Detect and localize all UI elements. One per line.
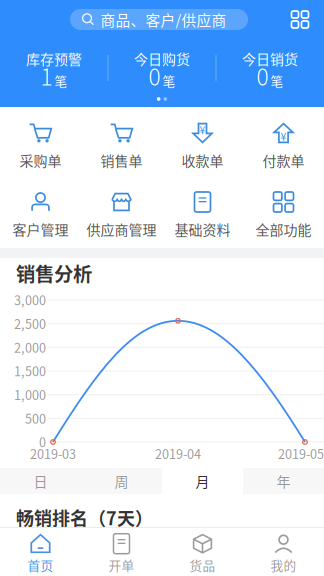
staticText: 月 <box>195 471 209 491</box>
staticText: 0 <box>148 59 160 92</box>
staticText: 库存预警 <box>26 48 82 69</box>
staticText: 供应商管理 <box>86 219 156 239</box>
staticText: 500 <box>25 409 46 427</box>
button[interactable]: 全部功能 <box>243 177 324 246</box>
button[interactable]: 采购单 <box>0 108 81 177</box>
button[interactable]: 商品、客户/供应商 <box>70 9 248 30</box>
button[interactable]: 基础资料 <box>162 177 243 246</box>
staticText: 2,000 <box>14 338 46 356</box>
staticText: 今日购货 <box>134 48 190 69</box>
staticText: 笔 <box>54 72 67 90</box>
staticText: 1 <box>40 59 52 92</box>
button[interactable]: 首页 <box>0 528 81 576</box>
button[interactable]: 周 <box>81 468 162 494</box>
staticText: 日 <box>33 471 47 491</box>
staticText: 货品 <box>189 556 215 574</box>
staticText: 笔 <box>162 72 175 90</box>
button[interactable]: 客户管理 <box>0 177 81 246</box>
staticText: 基础资料 <box>174 219 230 239</box>
staticText: ¥ <box>280 128 286 144</box>
button[interactable]: 货品 <box>162 528 243 576</box>
staticText: 2019-04 <box>155 444 201 463</box>
button[interactable]: 供应商管理 <box>81 177 162 246</box>
staticText: 开单 <box>108 556 134 574</box>
staticText: 1,500 <box>14 362 46 380</box>
staticText: 2019-03 <box>30 444 76 463</box>
staticText: 0 <box>39 433 46 451</box>
staticText: 周 <box>114 471 128 491</box>
staticText: 2,500 <box>14 314 46 333</box>
button[interactable]: 日 <box>0 468 81 494</box>
button[interactable]: 月 <box>162 468 243 494</box>
staticText: 1,000 <box>14 385 46 404</box>
staticText: 0 <box>256 59 268 92</box>
staticText: 畅销排名（7天） <box>16 504 153 531</box>
staticText: 2019-05 <box>278 444 324 463</box>
staticText: 销售单 <box>100 150 142 170</box>
staticText: 首页 <box>27 556 53 574</box>
staticText: ¥ <box>199 122 205 137</box>
staticText: 销售分析 <box>16 259 92 287</box>
staticText: 今日销货 <box>242 48 298 69</box>
staticText: 客户管理 <box>12 219 68 239</box>
staticText: 笔 <box>270 72 283 90</box>
staticText: 我的 <box>270 556 296 574</box>
button[interactable]: 全部功能菜单 <box>283 9 317 30</box>
staticText: 收款单 <box>181 150 223 170</box>
button[interactable]: 我的 <box>243 528 324 576</box>
button[interactable]: ¥ <box>162 108 243 177</box>
staticText: 全部功能 <box>255 219 311 239</box>
button[interactable]: ¥ <box>243 108 324 177</box>
button[interactable]: 销售单 <box>81 108 162 177</box>
button[interactable]: 开单 <box>81 528 162 576</box>
staticText: 3,000 <box>14 291 46 309</box>
staticText: 商品、客户/供应商 <box>100 9 226 30</box>
staticText: 采购单 <box>19 150 61 170</box>
staticText: 年 <box>276 471 290 491</box>
button[interactable]: 年 <box>243 468 324 494</box>
staticText: 付款单 <box>262 150 304 170</box>
